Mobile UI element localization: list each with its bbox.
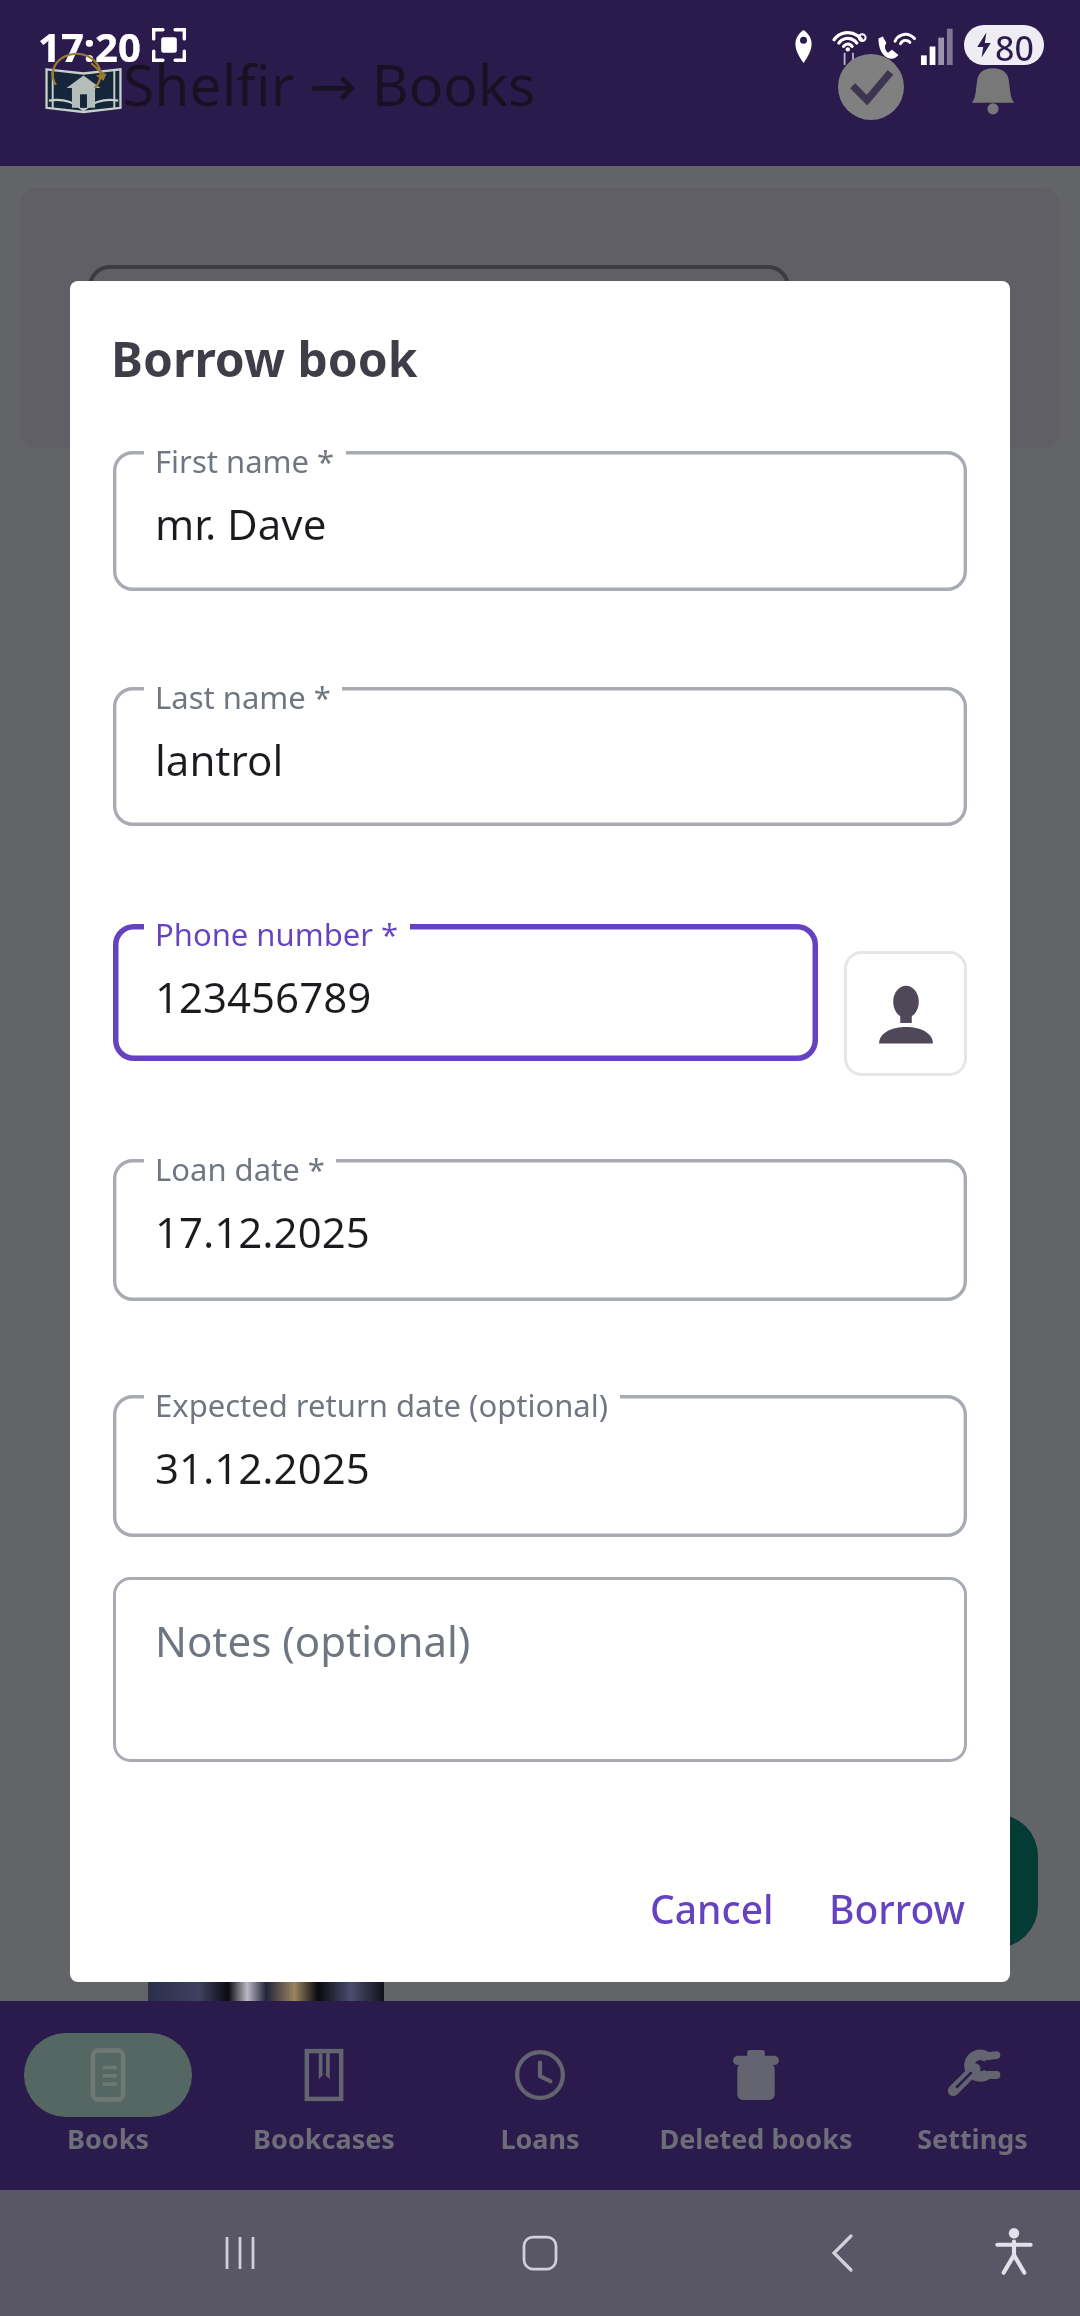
button[interactable]: Books: [0, 2001, 216, 2190]
staticText: First name *: [155, 440, 335, 482]
staticText: Cancel: [650, 1882, 774, 1935]
button[interactable]: Last name *: [113, 687, 967, 826]
staticText: Borrow book: [111, 326, 418, 391]
staticText: Books: [67, 2120, 149, 2157]
button[interactable]: Accessibility: [988, 2226, 1040, 2278]
staticText: 31.12.2025: [155, 1439, 370, 1496]
staticText: Loans: [500, 2120, 580, 2157]
button[interactable]: Phone number *: [113, 924, 818, 1061]
button[interactable]: Saved: [838, 54, 904, 120]
staticText: 17.12.2025: [155, 1203, 370, 1260]
staticText: 123456789: [155, 968, 372, 1025]
button[interactable]: Cancel: [634, 1868, 790, 1949]
staticText: Last name *: [155, 676, 331, 718]
button[interactable]: Pick contact: [844, 951, 967, 1076]
button[interactable]: Settings: [864, 2001, 1080, 2190]
button[interactable]: Notes (optional): [113, 1577, 967, 1762]
button[interactable]: First name *: [113, 451, 967, 591]
staticText: 17:20: [38, 19, 141, 73]
staticText: Bookcases: [253, 2120, 395, 2157]
button[interactable]: Deleted books: [648, 2001, 864, 2190]
staticText: Notes (optional): [155, 1612, 471, 1669]
button[interactable]: Expected return date (optional): [113, 1395, 967, 1537]
staticText: Phone number *: [155, 913, 399, 955]
staticText: lantrol: [155, 731, 284, 788]
button[interactable]: Home: [515, 2228, 565, 2278]
staticText: Borrow: [829, 1882, 966, 1935]
button[interactable]: Bookcases: [216, 2001, 432, 2190]
button[interactable]: Recents: [215, 2228, 265, 2278]
button[interactable]: Loan date *: [113, 1159, 967, 1301]
staticText: Deleted books: [659, 2120, 853, 2157]
button[interactable]: Loans: [432, 2001, 648, 2190]
button[interactable]: Notifications: [962, 58, 1024, 120]
staticText: 80: [995, 25, 1034, 65]
staticText: mr. Dave: [155, 495, 327, 552]
staticText: Settings: [917, 2120, 1028, 2157]
staticText: Shelfir → Books: [123, 45, 536, 123]
button[interactable]: Borrow: [813, 1868, 982, 1949]
staticText: Expected return date (optional): [155, 1384, 609, 1426]
staticText: Loan date *: [155, 1148, 325, 1190]
button[interactable]: Add book: [904, 1814, 1038, 1948]
button[interactable]: Back: [818, 2228, 868, 2278]
